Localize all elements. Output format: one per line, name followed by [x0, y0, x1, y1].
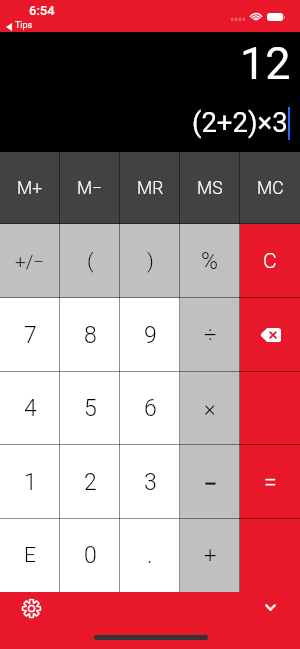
staticText: 9: [144, 322, 157, 349]
staticText: 5: [84, 395, 97, 422]
button[interactable]: C: [240, 224, 300, 298]
button[interactable]: ): [120, 224, 180, 298]
staticText: ÷: [204, 322, 217, 348]
staticText: ): [147, 249, 154, 274]
button[interactable]: ÷: [180, 298, 240, 372]
button[interactable]: 9: [120, 298, 180, 372]
button[interactable]: M+: [0, 152, 60, 224]
button[interactable]: M−: [60, 152, 120, 224]
staticText: 1: [24, 469, 37, 496]
button[interactable]: 7: [0, 298, 60, 372]
staticText: 6:54: [29, 3, 55, 18]
button[interactable]: 1: [0, 445, 60, 519]
staticText: 6: [144, 395, 157, 422]
button[interactable]: .: [120, 519, 180, 592]
button[interactable]: ×: [180, 372, 240, 445]
button[interactable]: (: [60, 224, 120, 298]
button[interactable]: 2: [60, 445, 120, 519]
staticText: E: [24, 543, 36, 568]
staticText: +: [204, 543, 217, 569]
staticText: (2+2)×3: [192, 106, 288, 138]
staticText: 2: [84, 469, 97, 496]
button[interactable]: Minus: [180, 445, 240, 519]
button[interactable]: Settings: [14, 591, 48, 625]
button[interactable]: +: [180, 519, 240, 592]
button[interactable]: 8: [60, 298, 120, 372]
button[interactable]: Backspace: [240, 298, 300, 372]
staticText: 4: [24, 395, 37, 422]
staticText: 12: [240, 37, 291, 90]
button[interactable]: 3: [120, 445, 180, 519]
button[interactable]: MR: [120, 152, 180, 224]
staticText: M−: [77, 178, 103, 199]
button[interactable]: MC: [240, 152, 300, 224]
staticText: 3: [144, 469, 157, 496]
staticText: =: [264, 469, 277, 496]
staticText: MR: [137, 178, 164, 199]
staticText: ×: [204, 396, 216, 422]
button[interactable]: E: [0, 519, 60, 592]
staticText: .: [147, 542, 153, 569]
staticText: +/−: [15, 250, 45, 272]
button[interactable]: 6: [120, 372, 180, 445]
staticText: (: [87, 249, 94, 274]
staticText: MS: [197, 178, 223, 199]
button[interactable]: 5: [60, 372, 120, 445]
staticText: MC: [257, 178, 284, 199]
staticText: 0: [84, 542, 97, 569]
button[interactable]: +/−: [0, 224, 60, 298]
staticText: Tips: [15, 20, 33, 31]
staticText: 7: [24, 322, 37, 349]
button[interactable]: =: [240, 372, 300, 592]
button[interactable]: 4: [0, 372, 60, 445]
staticText: C: [263, 249, 277, 274]
button[interactable]: MS: [180, 152, 240, 224]
staticText: 8: [84, 322, 97, 349]
staticText: %: [201, 248, 219, 275]
staticText: M+: [17, 178, 43, 199]
button[interactable]: Collapse keyboard: [253, 590, 287, 624]
button[interactable]: 0: [60, 519, 120, 592]
button[interactable]: %: [180, 224, 240, 298]
